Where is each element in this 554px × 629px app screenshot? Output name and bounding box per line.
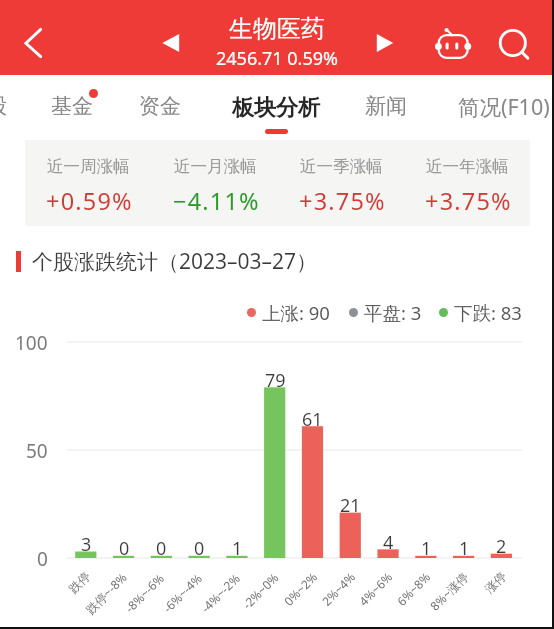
staticText: 2456.71 0.59% <box>216 46 338 71</box>
staticText: -6%~-4% <box>159 570 205 616</box>
staticText: 50 <box>26 438 48 464</box>
staticText: 0 <box>37 546 48 572</box>
staticText: 下跌: 83 <box>454 300 522 325</box>
staticText: 0 <box>194 536 205 561</box>
staticText: 近一月涨幅 <box>174 156 257 177</box>
staticText: 个股涨跌统计（2023–03–27） <box>32 247 318 276</box>
staticText: 1 <box>232 536 243 561</box>
staticText: 新闻 <box>365 93 407 119</box>
button[interactable]: 股 <box>0 82 14 130</box>
staticText: 近一年涨幅 <box>426 156 509 177</box>
button[interactable]: 简况(F10) <box>446 82 554 130</box>
staticText: 基金 <box>51 93 93 119</box>
staticText: 跌停 <box>66 569 93 596</box>
button[interactable]: AI assistant <box>433 24 471 62</box>
staticText: 1 <box>459 536 470 561</box>
button[interactable]: 新闻 <box>348 82 424 130</box>
staticText: 资金 <box>139 93 181 119</box>
button[interactable]: Search <box>494 25 532 63</box>
staticText: 61 <box>302 407 323 432</box>
staticText: 79 <box>265 368 286 393</box>
staticText: 2%~4% <box>318 568 358 609</box>
staticText: 1 <box>421 536 432 561</box>
staticText: 0 <box>119 536 130 561</box>
button[interactable]: 资金 <box>122 82 198 130</box>
staticText: -4%~-2% <box>197 570 243 616</box>
staticText: +3.75% <box>425 185 512 217</box>
staticText: -8%~-6% <box>121 570 167 616</box>
staticText: +3.75% <box>299 185 386 217</box>
staticText: 上涨: 90 <box>262 300 330 325</box>
button[interactable]: Next sector <box>367 24 405 62</box>
staticText: 8%~涨停 <box>426 568 472 614</box>
staticText: −4.11% <box>173 185 260 217</box>
staticText: 4 <box>383 530 394 555</box>
staticText: 股 <box>0 93 7 119</box>
staticText: 简况(F10) <box>458 92 550 121</box>
staticText: 生物医药 <box>229 14 325 44</box>
staticText: 100 <box>15 330 48 356</box>
staticText: -2%~0% <box>239 569 282 612</box>
button[interactable]: Previous sector <box>152 24 190 62</box>
button[interactable]: 基金 <box>34 82 110 130</box>
staticText: +0.59% <box>46 185 133 217</box>
staticText: 6%~8% <box>393 568 433 609</box>
button[interactable]: 板块分析 <box>217 82 335 140</box>
staticText: 0 <box>156 536 167 561</box>
button[interactable]: Back <box>14 20 56 62</box>
staticText: 4%~6% <box>355 568 395 609</box>
staticText: 21 <box>340 493 361 518</box>
staticText: 近一周涨幅 <box>47 156 130 177</box>
staticText: 3 <box>81 532 92 557</box>
staticText: 近一季涨幅 <box>300 156 383 177</box>
staticText: 跌停~-8% <box>82 569 130 617</box>
staticText: 0%~2% <box>280 568 320 609</box>
staticText: 平盘: 3 <box>364 300 422 325</box>
staticText: 板块分析 <box>232 94 320 122</box>
staticText: 2 <box>496 534 507 559</box>
staticText: 涨停 <box>482 569 509 596</box>
